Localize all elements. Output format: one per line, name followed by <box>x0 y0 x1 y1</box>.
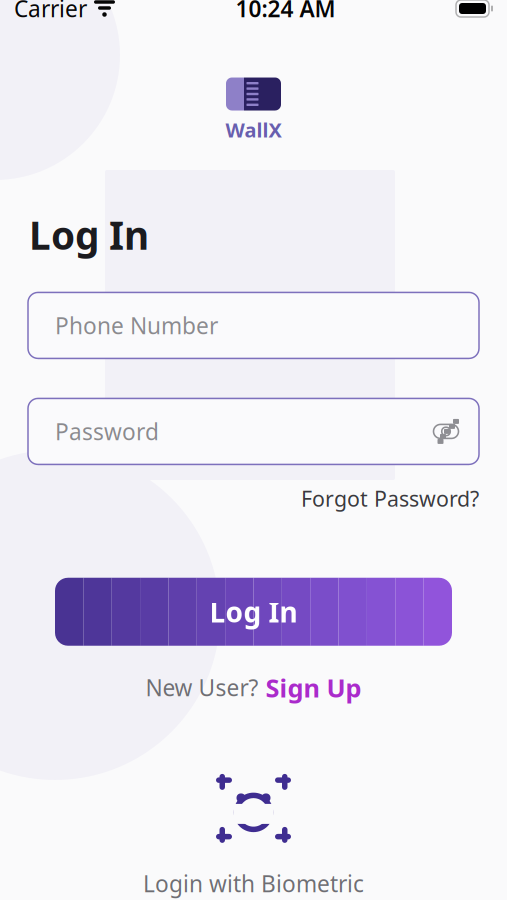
button[interactable]: Show password <box>431 416 461 446</box>
button[interactable]: Login with Biometric <box>143 777 364 898</box>
staticText: WallX <box>225 116 281 143</box>
staticText: Sign Up <box>265 671 361 704</box>
staticText: Password <box>55 416 159 446</box>
staticText: Log In <box>29 209 149 260</box>
staticText: 10:24 AM <box>235 0 335 24</box>
staticText: Phone Number <box>55 310 218 340</box>
button[interactable]: New User? <box>145 666 361 709</box>
staticText: Forgot Password? <box>301 484 479 513</box>
staticText: Log In <box>209 593 297 630</box>
button[interactable]: Log In <box>55 578 452 646</box>
button[interactable]: Forgot Password? <box>301 479 479 518</box>
staticText: Carrier <box>14 0 87 24</box>
staticText: New User? <box>145 672 258 703</box>
staticText: Login with Biometric <box>143 868 364 898</box>
